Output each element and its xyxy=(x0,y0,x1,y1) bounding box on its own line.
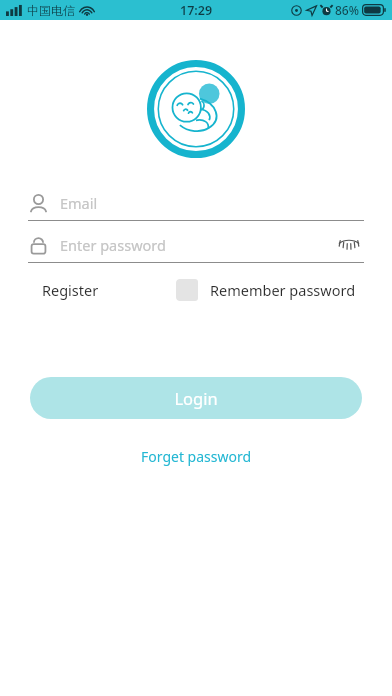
staticText: 86% xyxy=(335,2,359,18)
button[interactable]: Register xyxy=(28,275,113,305)
staticText: Remember password xyxy=(210,280,356,300)
staticText: 中国电信 xyxy=(27,3,75,18)
staticText: Forget password xyxy=(141,447,252,466)
staticText: Enter password xyxy=(60,235,166,255)
staticText: 17:29 xyxy=(180,2,213,19)
button[interactable]: Remember password xyxy=(176,279,362,301)
staticText: Register xyxy=(42,280,99,300)
button[interactable]: Login xyxy=(30,377,362,419)
button[interactable]: Email xyxy=(28,186,364,221)
button[interactable]: Show password xyxy=(334,230,364,260)
button[interactable]: Enter password xyxy=(28,228,364,263)
staticText: Login xyxy=(174,387,218,409)
button[interactable]: Forget password xyxy=(133,443,260,470)
staticText: Email xyxy=(60,193,98,213)
